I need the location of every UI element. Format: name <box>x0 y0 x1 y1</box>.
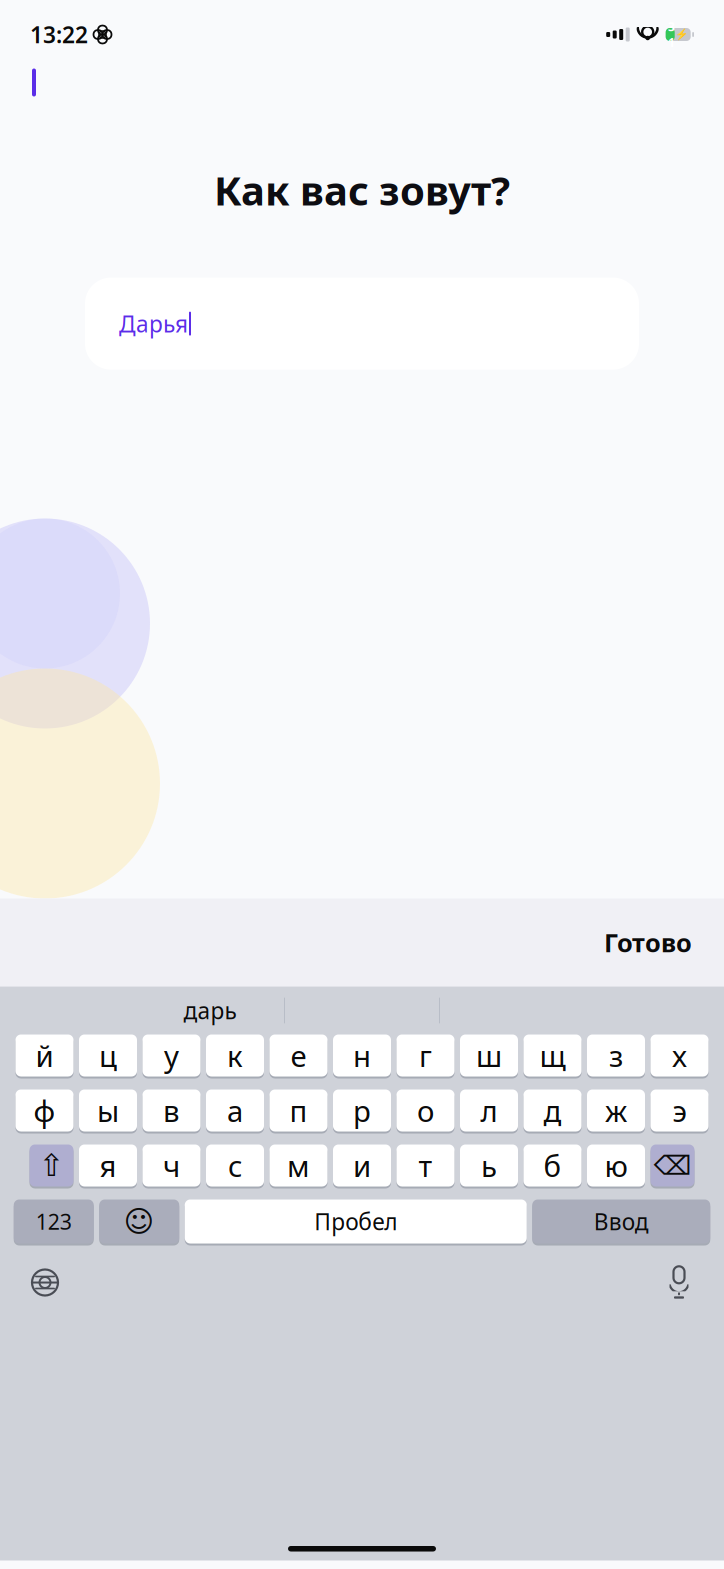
staticText: Готово <box>604 926 692 959</box>
button[interactable]: Дарья <box>85 278 639 370</box>
button[interactable]: ь <box>460 1144 518 1188</box>
staticText: б <box>543 1146 561 1185</box>
button[interactable]: л <box>460 1089 518 1133</box>
button[interactable]: г <box>396 1034 454 1078</box>
staticText: ⇧ <box>38 1148 64 1183</box>
staticText: ю <box>604 1146 627 1185</box>
button[interactable]: ц <box>79 1034 137 1078</box>
button[interactable]: э <box>650 1089 708 1133</box>
staticText: ⌫ <box>653 1150 691 1181</box>
staticText: ч <box>163 1146 180 1185</box>
staticText: й <box>35 1036 53 1075</box>
button[interactable]: дарь <box>136 988 284 1032</box>
staticText: дарь <box>183 995 236 1025</box>
button[interactable]: Shift <box>29 1144 73 1188</box>
button[interactable]: Emoji <box>99 1199 179 1245</box>
button[interactable]: с <box>206 1144 264 1188</box>
staticText: з <box>609 1036 623 1075</box>
button[interactable]: д <box>523 1089 581 1133</box>
button[interactable]: х <box>650 1034 708 1078</box>
staticText: у <box>164 1036 179 1075</box>
staticText: ф <box>33 1091 55 1130</box>
staticText: р <box>353 1091 371 1130</box>
staticText: с <box>228 1146 242 1185</box>
staticText: Пробел <box>314 1206 397 1236</box>
button[interactable]: п <box>269 1089 327 1133</box>
button[interactable]: ж <box>587 1089 645 1133</box>
button[interactable]: Готово <box>594 916 702 969</box>
button[interactable]: Пробел <box>185 1199 527 1245</box>
staticText: я <box>99 1146 116 1185</box>
staticText: 31 <box>668 19 675 50</box>
button[interactable]: в <box>142 1089 200 1133</box>
button[interactable]: 123 <box>14 1199 94 1245</box>
button[interactable]: р <box>333 1089 391 1133</box>
button[interactable]: Delete <box>650 1144 694 1188</box>
staticText: Как вас зовут? <box>214 163 510 217</box>
staticText: ы <box>97 1091 119 1130</box>
staticText: х <box>672 1036 687 1075</box>
button[interactable]: й <box>15 1034 73 1078</box>
staticText: г <box>419 1036 432 1075</box>
staticText: н <box>353 1036 371 1075</box>
staticText: 13:22 <box>30 19 88 49</box>
button[interactable]: ф <box>15 1089 73 1133</box>
button[interactable]: а <box>206 1089 264 1133</box>
button[interactable]: е <box>269 1034 327 1078</box>
staticText: к <box>227 1036 243 1075</box>
staticText: ь <box>481 1146 497 1185</box>
staticText: ц <box>99 1036 117 1075</box>
button[interactable]: м <box>269 1144 327 1188</box>
button[interactable]: б <box>523 1144 581 1188</box>
button[interactable]: я <box>79 1144 137 1188</box>
staticText: т <box>418 1146 432 1185</box>
button[interactable]: щ <box>523 1034 581 1078</box>
button[interactable]: ю <box>587 1144 645 1188</box>
staticText: Ввод <box>594 1206 649 1236</box>
button[interactable]: ш <box>460 1034 518 1078</box>
staticText: ⚡ <box>675 28 688 41</box>
button[interactable]: ы <box>79 1089 137 1133</box>
button[interactable]: з <box>587 1034 645 1078</box>
button[interactable]: т <box>396 1144 454 1188</box>
staticText: э <box>672 1091 686 1130</box>
staticText: и <box>353 1146 371 1185</box>
button[interactable]: Switch keyboard <box>18 1255 72 1309</box>
button[interactable]: Dictate <box>652 1255 706 1309</box>
staticText: е <box>290 1036 306 1075</box>
staticText: а <box>227 1091 243 1130</box>
staticText: 123 <box>36 1207 72 1236</box>
button[interactable]: н <box>333 1034 391 1078</box>
button[interactable]: о <box>396 1089 454 1133</box>
button[interactable]: к <box>206 1034 264 1078</box>
button[interactable]: Ввод <box>532 1199 710 1245</box>
staticText: щ <box>539 1036 565 1075</box>
button[interactable]: и <box>333 1144 391 1188</box>
staticText: Дарья <box>119 309 188 339</box>
staticText: п <box>289 1091 307 1130</box>
button[interactable]: ч <box>142 1144 200 1188</box>
staticText: в <box>163 1091 180 1130</box>
staticText: л <box>480 1091 497 1130</box>
staticText: м <box>287 1146 310 1185</box>
staticText: ш <box>476 1036 502 1075</box>
button[interactable]: Back <box>10 59 50 105</box>
staticText: о <box>417 1091 434 1130</box>
button[interactable]: у <box>142 1034 200 1078</box>
staticText: ж <box>605 1091 627 1130</box>
staticText: д <box>543 1091 561 1130</box>
staticText: ☺ <box>124 1205 155 1238</box>
